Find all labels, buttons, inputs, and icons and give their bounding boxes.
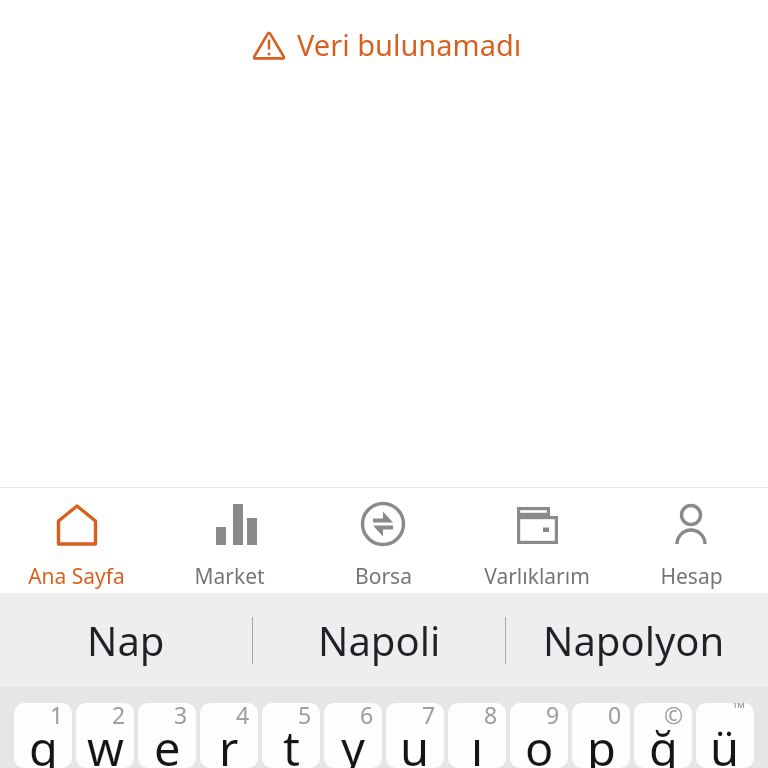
button[interactable]: o <box>510 703 568 768</box>
staticText: u <box>400 716 430 768</box>
button[interactable]: w <box>76 703 134 768</box>
button[interactable]: r <box>200 703 258 768</box>
staticText: Market <box>194 562 265 591</box>
button[interactable]: ğ <box>634 703 692 768</box>
staticText: 5 <box>298 703 312 730</box>
staticText: 3 <box>174 703 188 730</box>
staticText: Nap <box>87 613 165 667</box>
staticText: 7 <box>422 703 436 730</box>
staticText: 2 <box>112 703 126 730</box>
staticText: r <box>219 716 239 768</box>
button[interactable]: Ana Sayfa <box>0 488 153 593</box>
staticText: w <box>87 716 124 768</box>
staticText: ı <box>471 716 484 768</box>
button[interactable]: e <box>138 703 196 768</box>
staticText: 6 <box>360 703 374 730</box>
staticText: y <box>341 716 365 768</box>
button[interactable]: t <box>262 703 320 768</box>
staticText: p <box>587 716 616 768</box>
staticText: 9 <box>546 703 560 730</box>
button[interactable]: q <box>14 703 72 768</box>
staticText: ™ <box>733 703 746 719</box>
button[interactable]: y <box>324 703 382 768</box>
button[interactable]: Napolyon <box>506 593 761 687</box>
staticText: ğ <box>649 716 678 768</box>
staticText: Borsa <box>355 562 412 591</box>
button[interactable]: Market <box>153 488 306 593</box>
staticText: Varlıklarım <box>484 562 590 591</box>
button[interactable]: Nap <box>0 593 252 687</box>
staticText: 1 <box>50 703 64 730</box>
staticText: 8 <box>484 703 498 730</box>
staticText: Napoli <box>318 613 441 667</box>
staticText: 4 <box>236 703 250 730</box>
staticText: Napolyon <box>543 613 725 667</box>
button[interactable]: p <box>572 703 630 768</box>
staticText: © <box>664 703 684 730</box>
button[interactable]: u <box>386 703 444 768</box>
staticText: 0 <box>608 703 622 730</box>
staticText: e <box>154 716 181 768</box>
staticText: Hesap <box>660 562 723 591</box>
button[interactable]: Varlıklarım <box>460 488 614 593</box>
staticText: q <box>29 716 58 768</box>
button[interactable]: ı <box>448 703 506 768</box>
staticText: ü <box>710 716 740 768</box>
button[interactable]: Borsa <box>306 488 460 593</box>
button[interactable]: ü <box>696 703 754 768</box>
staticText: Ana Sayfa <box>28 562 125 591</box>
staticText: Veri bulunamadı <box>297 25 522 64</box>
staticText: t <box>283 716 300 768</box>
button[interactable]: Hesap <box>614 488 768 593</box>
button[interactable]: Napoli <box>253 593 505 687</box>
staticText: o <box>525 716 554 768</box>
